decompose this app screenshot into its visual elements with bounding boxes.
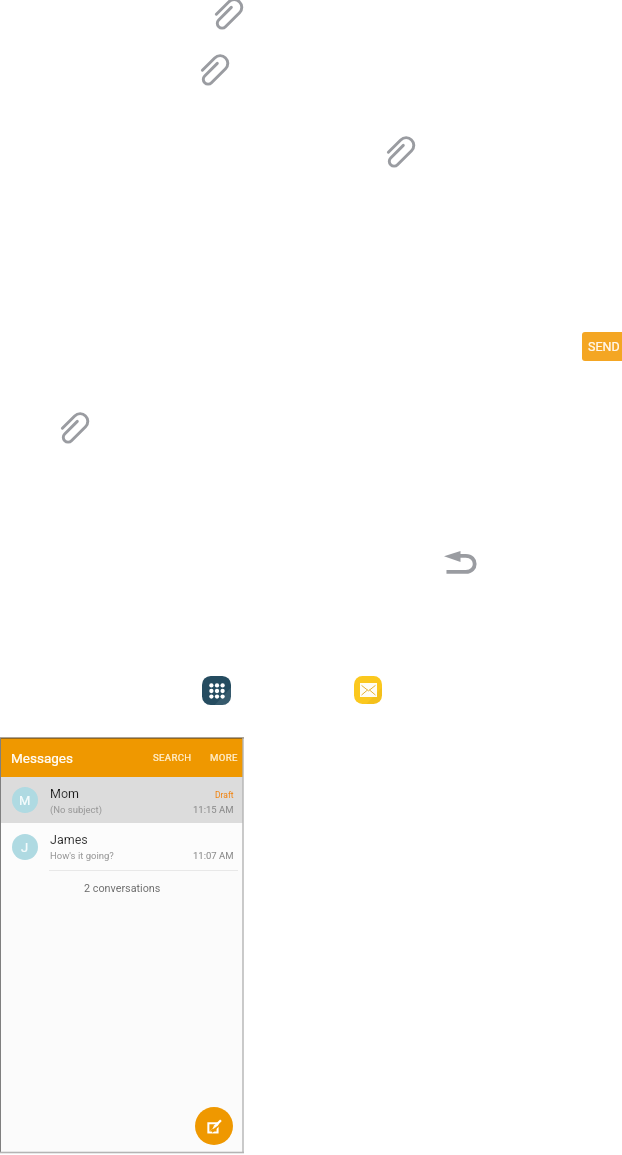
staticText: Messages (11, 750, 73, 766)
staticText: 2 conversations (84, 882, 161, 895)
button[interactable]: Compose new message (195, 1107, 233, 1145)
staticText: (No subject) (50, 804, 102, 815)
staticText: M (19, 793, 31, 808)
staticText: James (50, 832, 88, 847)
button[interactable]: Reply (444, 551, 477, 574)
button[interactable]: Attach file (386, 137, 414, 165)
staticText: 11:07 AM (193, 850, 234, 861)
button[interactable]: SEARCH (149, 743, 194, 772)
button[interactable]: J (1, 823, 243, 870)
button[interactable]: MORE (194, 743, 243, 772)
staticText: SEND (588, 339, 620, 354)
button[interactable]: Attach file (200, 55, 228, 83)
staticText: 11:15 AM (193, 804, 234, 815)
button[interactable]: SEND (582, 332, 622, 361)
staticText: J (21, 840, 29, 855)
button[interactable]: Attach file (60, 413, 88, 441)
staticText: Mom (50, 786, 80, 801)
staticText: SEARCH (153, 752, 192, 763)
button[interactable]: Attach file (214, 0, 242, 27)
staticText: How's it going? (50, 850, 114, 861)
button[interactable]: Messages app (354, 676, 382, 704)
button[interactable]: M (1, 777, 243, 823)
staticText: MORE (210, 752, 238, 763)
button[interactable]: Apps (202, 676, 231, 705)
staticText: Draft (215, 790, 234, 800)
